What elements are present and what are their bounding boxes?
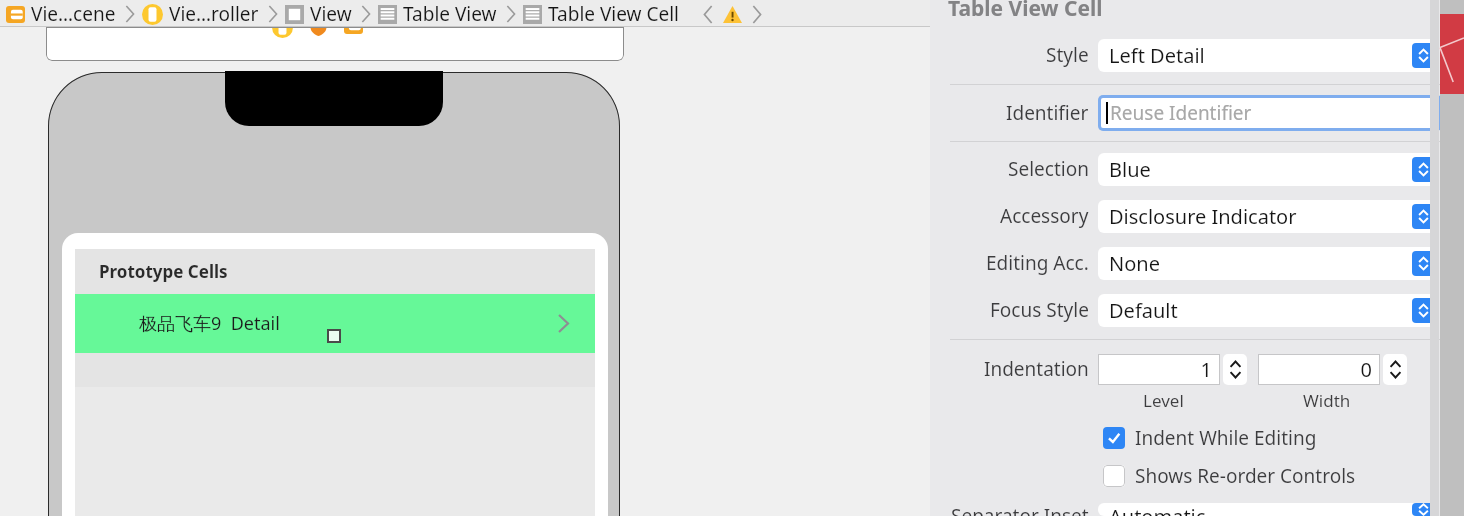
staticText: Prototype Cells xyxy=(99,260,228,283)
button[interactable]: None xyxy=(1098,247,1438,280)
button[interactable]: Stepper xyxy=(1223,354,1247,385)
button[interactable]: Indent While Editing xyxy=(1103,425,1317,451)
button[interactable]: 1 xyxy=(1098,354,1220,385)
button[interactable]: Table view controller xyxy=(344,27,363,34)
button[interactable]: Blue xyxy=(1098,153,1438,186)
button[interactable]: View xyxy=(281,1,356,27)
staticText: Level xyxy=(1143,389,1184,412)
staticText: Selection xyxy=(1008,156,1089,182)
button[interactable]: Table View Cell xyxy=(519,1,683,27)
staticText: Left Detail xyxy=(1109,42,1205,69)
staticText: Default xyxy=(1109,297,1178,324)
staticText: Identifier xyxy=(1006,100,1089,126)
staticText: Vie…roller xyxy=(169,1,259,27)
button[interactable]: Vie…roller xyxy=(138,1,263,27)
staticText: Disclosure Indicator xyxy=(1109,203,1297,230)
button[interactable]: Navigation controller xyxy=(309,27,328,36)
staticText: Focus Style xyxy=(990,297,1089,323)
button[interactable]: View controller xyxy=(272,27,293,38)
staticText: Indentation xyxy=(984,356,1089,382)
staticText: Shows Re-order Controls xyxy=(1135,463,1356,489)
button[interactable]: Previous issue xyxy=(697,1,719,27)
button[interactable]: Warning xyxy=(719,1,745,27)
button[interactable]: 0 xyxy=(1258,354,1380,385)
button[interactable]: Shows Re-order Controls xyxy=(1103,463,1356,489)
button[interactable]: Disclosure Indicator xyxy=(1098,200,1438,233)
staticText: Reuse Identifier xyxy=(1110,100,1252,126)
staticText: Editing Acc. xyxy=(986,250,1089,276)
button[interactable]: Automatic xyxy=(1098,503,1438,516)
staticText: Accessory xyxy=(1000,203,1089,229)
staticText: Table View Cell xyxy=(548,1,679,27)
staticText: 0 xyxy=(1360,356,1372,383)
staticText: Table View xyxy=(403,1,497,27)
button[interactable]: 极品飞车9 Detail xyxy=(75,294,595,353)
button[interactable]: Stepper xyxy=(1383,354,1407,385)
staticText: Style xyxy=(1046,42,1089,68)
staticText: Automatic xyxy=(1109,503,1206,516)
staticText: Vie…cene xyxy=(31,1,116,27)
staticText: View xyxy=(310,1,352,27)
button[interactable]: Reuse Identifier xyxy=(1101,98,1439,128)
button[interactable]: Next issue xyxy=(745,1,767,27)
staticText: 极品飞车9 Detail xyxy=(139,311,280,336)
staticText: Table View Cell xyxy=(948,0,1103,16)
staticText: Indent While Editing xyxy=(1135,425,1317,451)
button[interactable]: Vie…cene xyxy=(2,1,120,27)
staticText: Separator Inset xyxy=(951,503,1089,516)
staticText: Blue xyxy=(1109,156,1151,183)
staticText: 1 xyxy=(1200,356,1212,383)
button[interactable]: Table View xyxy=(374,1,501,27)
staticText: Width xyxy=(1303,389,1351,412)
staticText: None xyxy=(1109,250,1160,277)
button[interactable]: Left Detail xyxy=(1098,39,1438,72)
button[interactable]: Default xyxy=(1098,294,1438,327)
